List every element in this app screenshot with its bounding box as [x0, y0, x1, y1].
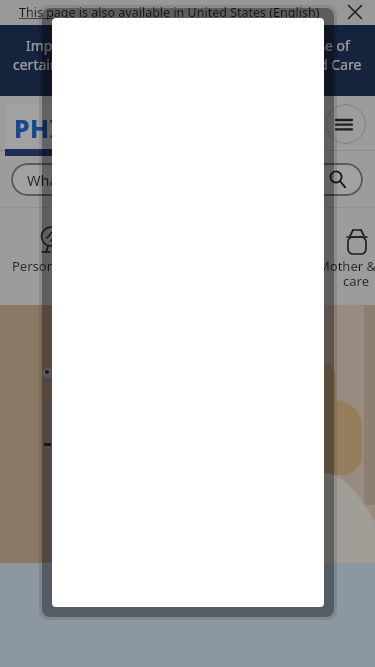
button[interactable]: Mother & child [310, 215, 375, 295]
button[interactable]: Personal care [5, 215, 100, 295]
button[interactable]: What are you looking for? [11, 163, 363, 196]
staticText: certain Philips Avent products in Mother… [13, 55, 362, 74]
button[interactable]: Important information regarding the purc… [0, 25, 375, 96]
button[interactable]: PHILIPS [5, 103, 135, 149]
button[interactable] [343, 0, 369, 25]
button[interactable] [326, 104, 366, 144]
staticText: Mother & child [318, 257, 375, 275]
staticText: care [343, 272, 369, 290]
staticText: Personal care [12, 257, 95, 275]
staticText: PHILIPS [14, 111, 116, 145]
button[interactable]: This page is also available in United St… [16, 2, 334, 23]
staticText: What are you looking for? [27, 170, 202, 190]
staticText: This page is also available in United St… [19, 4, 320, 21]
staticText: Important information regarding the purc… [26, 36, 350, 55]
